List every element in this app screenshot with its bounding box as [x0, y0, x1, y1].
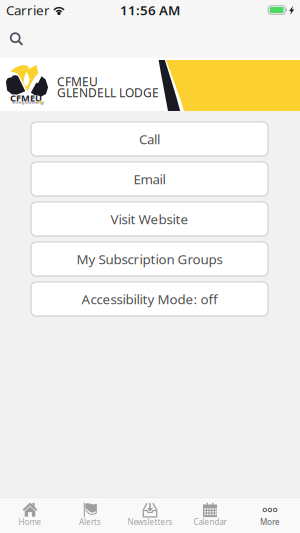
staticText: Alerts — [79, 517, 101, 527]
staticText: CFMEU — [10, 92, 42, 104]
staticText: Call — [139, 130, 160, 148]
button[interactable]: My Subscription Groups — [31, 242, 268, 276]
staticText: 11:56 AM — [120, 1, 180, 19]
button[interactable]: Alerts — [60, 497, 120, 533]
button[interactable]: More — [240, 497, 300, 533]
staticText: GLENDELL LODGE — [57, 84, 159, 100]
staticText: Carrier — [6, 1, 50, 19]
button[interactable]: Search — [4, 26, 29, 51]
button[interactable]: Accessibility Mode: off — [31, 282, 268, 316]
button[interactable]: Home — [0, 497, 60, 533]
staticText: Mining and Energy — [12, 100, 44, 105]
staticText: Calendar — [193, 517, 226, 527]
button[interactable]: Visit Website — [31, 202, 268, 236]
staticText: My Subscription Groups — [76, 250, 222, 268]
staticText: Accessibility Mode: off — [81, 290, 217, 308]
staticText: More — [260, 517, 280, 527]
staticText: CFMEU — [57, 73, 98, 89]
staticText: Newsletters — [127, 517, 172, 527]
button[interactable]: Calendar — [180, 497, 240, 533]
staticText: Email — [133, 170, 165, 188]
button[interactable]: Newsletters — [120, 497, 180, 533]
staticText: Home — [18, 517, 41, 527]
button[interactable]: Call — [31, 122, 268, 156]
button[interactable]: Email — [31, 162, 268, 196]
staticText: Visit Website — [110, 210, 188, 228]
